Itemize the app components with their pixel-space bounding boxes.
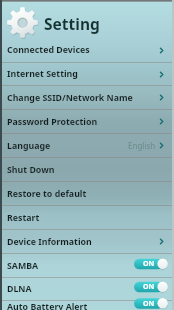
button[interactable]: Restore to default — [0, 182, 174, 205]
button[interactable]: DLNA — [0, 278, 174, 300]
button[interactable]: Device Information — [0, 230, 174, 253]
button[interactable]: Language — [0, 134, 174, 157]
staticText: Language — [7, 140, 51, 152]
staticText: Setting — [44, 13, 100, 34]
staticText: Password Protection — [7, 116, 98, 128]
staticText: ON — [143, 259, 155, 269]
button[interactable]: Restart — [0, 206, 174, 229]
staticText: Restore to default — [7, 188, 87, 200]
staticText: Internet Setting — [7, 68, 78, 80]
staticText: SAMBA — [7, 260, 39, 272]
button[interactable]: Password Protection — [0, 110, 174, 133]
staticText: Auto Battery Alert — [7, 301, 88, 310]
button[interactable]: Auto Battery Alert — [0, 301, 174, 310]
button[interactable]: Toggle On — [134, 299, 168, 308]
staticText: ON — [143, 282, 155, 292]
staticText: Restart — [7, 212, 40, 224]
staticText: Change SSID/Network Name — [7, 92, 133, 104]
staticText: Shut Down — [7, 164, 55, 176]
button[interactable]: Shut Down — [0, 158, 174, 181]
button[interactable]: Toggle On — [134, 258, 168, 270]
button[interactable]: Internet Setting — [0, 63, 174, 85]
staticText: English — [128, 140, 156, 151]
button[interactable]: Connected Devices — [0, 38, 174, 62]
staticText: Connected Devices — [7, 44, 90, 56]
button[interactable]: SAMBA — [0, 254, 174, 277]
button[interactable]: Change SSID/Network Name — [0, 86, 174, 109]
staticText: Device Information — [7, 236, 92, 248]
staticText: DLNA — [7, 283, 32, 295]
button[interactable]: Toggle On — [134, 281, 168, 293]
staticText: ON — [143, 299, 155, 308]
